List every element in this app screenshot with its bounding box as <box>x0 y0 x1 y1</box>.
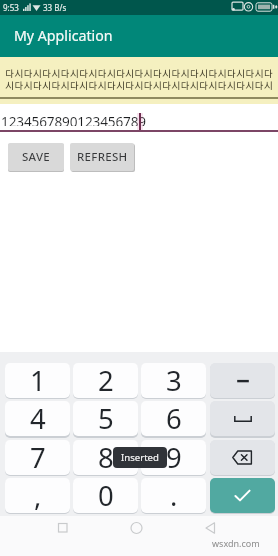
button[interactable]: 0 <box>73 478 138 513</box>
button[interactable]: 5 <box>73 401 138 436</box>
button[interactable] <box>0 57 278 104</box>
staticText: 1234567890123456789 <box>1 112 146 126</box>
staticText: SAVE <box>22 149 51 165</box>
button[interactable]: 6 <box>141 401 206 436</box>
button[interactable] <box>112 516 162 546</box>
button[interactable]: 7 <box>5 440 70 475</box>
button[interactable] <box>210 401 275 436</box>
staticText: 7 <box>30 440 46 474</box>
button[interactable]: 1 <box>5 363 70 398</box>
staticText: 33 B/s <box>43 2 67 13</box>
button[interactable]: , <box>5 478 70 513</box>
button[interactable]: SAVE <box>8 143 64 171</box>
button[interactable]: 4 <box>5 401 70 436</box>
staticText: Inserted <box>121 451 159 464</box>
button[interactable] <box>210 440 275 475</box>
button[interactable] <box>210 478 275 513</box>
staticText: . <box>170 478 178 512</box>
staticText: 시다시다시다시다시다시다시다시다시다시다시다시다시다시다시다 <box>5 81 273 91</box>
button[interactable]: 9 <box>141 440 206 475</box>
button[interactable] <box>40 516 90 546</box>
staticText: My Application <box>14 26 113 45</box>
staticText: 8 <box>98 440 114 474</box>
button[interactable] <box>186 516 236 546</box>
button[interactable] <box>210 363 275 398</box>
staticText: 4 <box>30 401 46 435</box>
button[interactable]: REFRESH <box>70 143 134 171</box>
button[interactable]: 2 <box>73 363 138 398</box>
staticText: 9 <box>166 440 182 474</box>
button[interactable]: . <box>141 478 206 513</box>
staticText: 2 <box>98 363 114 397</box>
button[interactable]: 8 <box>73 440 138 475</box>
staticText: 6 <box>166 401 182 435</box>
staticText: , <box>34 478 42 512</box>
staticText: 3 <box>166 363 182 397</box>
staticText: REFRESH <box>77 149 128 165</box>
staticText: 5 <box>98 401 114 435</box>
button[interactable]: 1234567890123456789 <box>1 112 151 126</box>
staticText: 다시다시다시다시다시다시다시다시다시다시다시다시다시다시다시 <box>5 69 273 79</box>
staticText: 1 <box>30 363 46 397</box>
button[interactable]: 3 <box>141 363 206 398</box>
staticText: wsxdn.com <box>212 537 260 549</box>
staticText: 0 <box>98 478 114 512</box>
staticText: 9:53 <box>3 2 19 13</box>
